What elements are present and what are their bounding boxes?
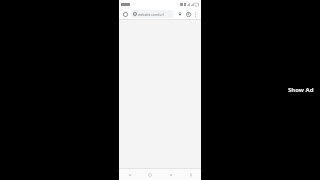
button[interactable]: Tabs — [166, 170, 175, 179]
button[interactable]: Home — [121, 10, 129, 18]
staticText: Show Ad — [288, 86, 314, 94]
staticText: website.com/url — [138, 12, 164, 17]
button[interactable]: website.com/url — [131, 10, 174, 18]
button[interactable]: Menu — [186, 170, 195, 179]
button[interactable]: More options — [192, 11, 199, 18]
button[interactable]: Back — [125, 170, 134, 179]
button[interactable]: Home — [145, 170, 154, 179]
button[interactable]: Account — [184, 10, 192, 18]
button[interactable]: Downloads — [176, 10, 184, 18]
